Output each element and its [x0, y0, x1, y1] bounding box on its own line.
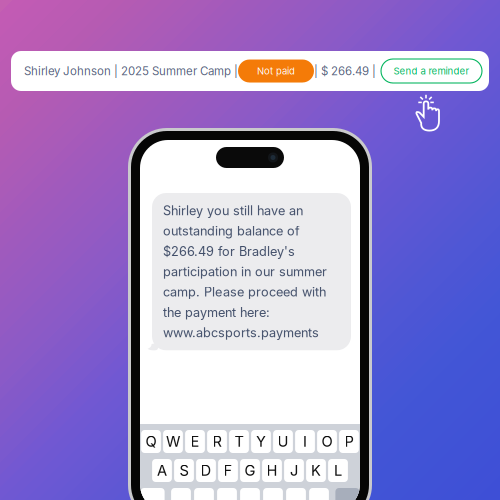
staticText: I: [303, 433, 307, 450]
button[interactable]: Key: [171, 488, 191, 500]
staticText: L: [334, 462, 342, 479]
button[interactable]: L: [328, 459, 348, 482]
staticText: | $ 266.49 |: [314, 64, 376, 78]
button[interactable]: Y: [251, 430, 271, 453]
staticText: J: [290, 462, 298, 479]
staticText: Send a reminder: [393, 65, 469, 77]
button[interactable]: K: [306, 459, 326, 482]
staticText: S: [179, 462, 188, 479]
staticText: Y: [256, 433, 266, 450]
button[interactable]: O: [317, 430, 337, 453]
staticText: H: [266, 462, 277, 479]
staticText: outstanding balance of: [163, 223, 300, 239]
button[interactable]: Key: [286, 488, 306, 500]
staticText: Not paid: [257, 65, 295, 77]
button[interactable]: R: [207, 430, 227, 453]
button[interactable]: Key: [309, 488, 329, 500]
staticText: www.abcsports.payments: [163, 325, 319, 340]
staticText: Shirley Johnson | 2025 Summer Camp |: [24, 64, 238, 78]
staticText: G: [244, 462, 255, 479]
staticText: O: [321, 433, 332, 450]
button[interactable]: W: [163, 430, 183, 453]
staticText: D: [200, 462, 211, 479]
button[interactable]: P: [339, 430, 359, 453]
staticText: A: [157, 462, 167, 479]
button[interactable]: Key: [335, 488, 359, 500]
staticText: $266.49 for Bradley's: [163, 244, 295, 259]
button[interactable]: E: [185, 430, 205, 453]
button[interactable]: Key: [263, 488, 283, 500]
button[interactable]: F: [218, 459, 238, 482]
button[interactable]: Key: [217, 488, 237, 500]
staticText: U: [277, 433, 288, 450]
button[interactable]: Not paid: [238, 59, 314, 82]
button[interactable]: Q: [141, 430, 161, 453]
staticText: E: [190, 433, 199, 450]
staticText: W: [166, 433, 180, 450]
button[interactable]: Send a reminder: [381, 59, 482, 83]
button[interactable]: A: [152, 459, 172, 482]
staticText: R: [212, 433, 221, 450]
staticText: P: [344, 433, 353, 450]
staticText: Shirley you still have an: [163, 203, 303, 218]
button[interactable]: G: [240, 459, 260, 482]
button[interactable]: T: [229, 430, 249, 453]
button[interactable]: J: [284, 459, 304, 482]
button[interactable]: U: [273, 430, 293, 453]
button[interactable]: S: [174, 459, 194, 482]
button[interactable]: I: [295, 430, 315, 453]
button[interactable]: Key: [141, 488, 165, 500]
staticText: participation in our summer: [163, 264, 327, 279]
staticText: Q: [145, 433, 156, 450]
button[interactable]: D: [196, 459, 216, 482]
button[interactable]: H: [262, 459, 282, 482]
staticText: K: [311, 462, 321, 479]
staticText: T: [234, 433, 243, 450]
button[interactable]: Key: [194, 488, 214, 500]
staticText: F: [223, 462, 232, 479]
button[interactable]: Key: [240, 488, 260, 500]
staticText: the payment here:: [163, 305, 270, 320]
staticText: camp. Please proceed with: [163, 284, 326, 300]
